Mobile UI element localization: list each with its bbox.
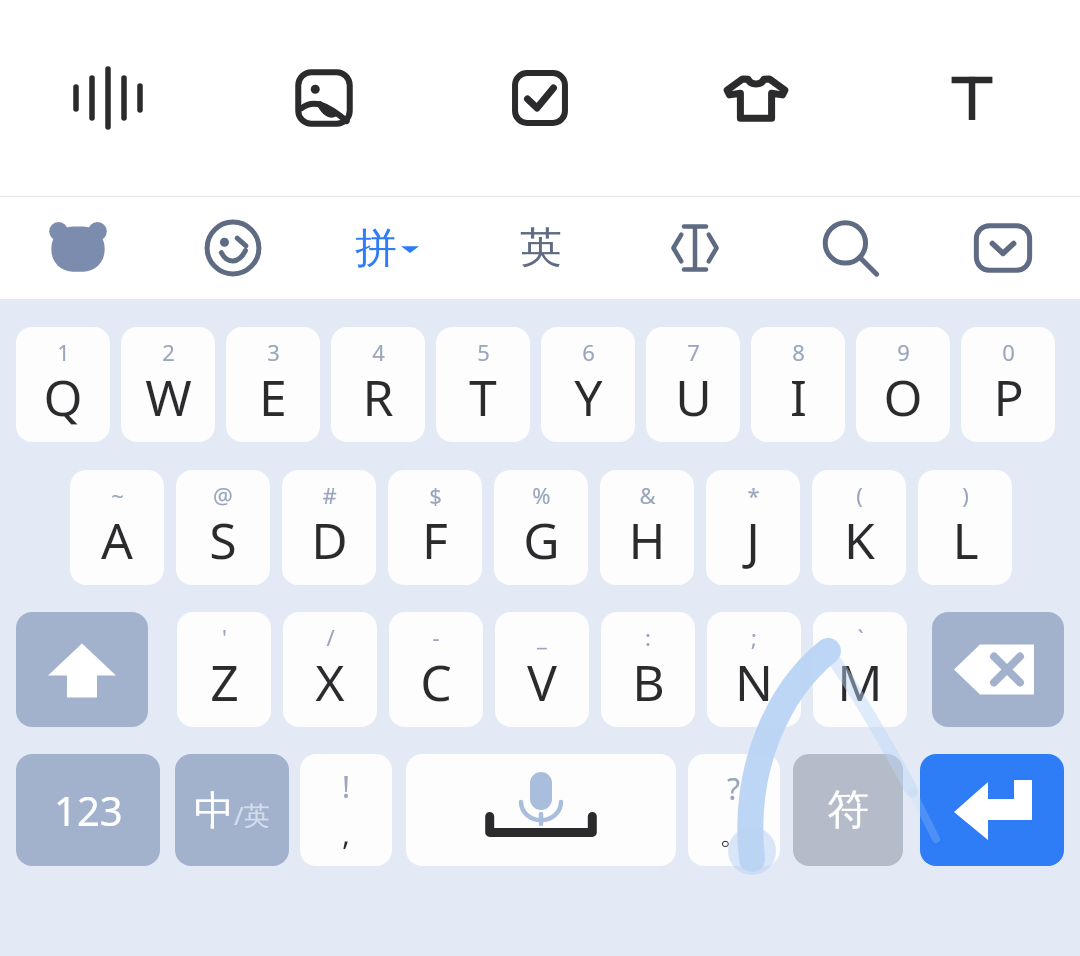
staticText: 符 bbox=[827, 784, 869, 837]
button[interactable]: Images bbox=[216, 0, 432, 196]
button[interactable]: 7 bbox=[646, 327, 740, 442]
staticText: V bbox=[527, 648, 557, 716]
button[interactable]: Shift bbox=[16, 612, 148, 727]
staticText: ' bbox=[222, 622, 227, 652]
button[interactable]: Emoji bbox=[155, 197, 310, 299]
button[interactable]: 1 bbox=[16, 327, 110, 442]
staticText: ! bbox=[342, 766, 351, 807]
staticText: ( bbox=[856, 480, 863, 510]
staticText: 0 bbox=[1002, 337, 1015, 367]
button[interactable]: ) bbox=[918, 470, 1012, 585]
staticText: N bbox=[735, 648, 773, 716]
staticText: / bbox=[326, 622, 335, 652]
staticText: W bbox=[145, 363, 192, 431]
button[interactable]: 拼 bbox=[310, 197, 464, 299]
button[interactable]: % bbox=[494, 470, 588, 585]
button[interactable]: $ bbox=[388, 470, 482, 585]
button[interactable]: ; bbox=[707, 612, 801, 727]
button[interactable]: 英 bbox=[464, 197, 618, 299]
button[interactable]: * bbox=[706, 470, 800, 585]
button[interactable]: 9 bbox=[856, 327, 950, 442]
staticText: Z bbox=[210, 648, 239, 716]
staticText: R bbox=[362, 363, 394, 431]
staticText: X bbox=[315, 648, 345, 716]
button[interactable]: _ bbox=[495, 612, 589, 727]
staticText: ` bbox=[857, 622, 864, 652]
staticText: ~ bbox=[111, 480, 124, 510]
staticText: S bbox=[209, 506, 237, 574]
button[interactable]: 4 bbox=[331, 327, 425, 442]
staticText: A bbox=[101, 506, 133, 574]
staticText: 1 bbox=[57, 337, 70, 367]
button[interactable]: @ bbox=[176, 470, 270, 585]
staticText: , bbox=[342, 813, 351, 854]
staticText: % bbox=[532, 480, 551, 510]
staticText: 4 bbox=[372, 337, 385, 367]
button[interactable]: 3 bbox=[226, 327, 320, 442]
staticText: K bbox=[844, 506, 875, 574]
staticText: 2 bbox=[162, 337, 175, 367]
staticText: * bbox=[747, 480, 760, 510]
staticText: 3 bbox=[267, 337, 280, 367]
staticText: - bbox=[432, 622, 440, 652]
staticText: P bbox=[993, 363, 1024, 431]
button[interactable]: Search bbox=[772, 197, 926, 299]
staticText: 6 bbox=[582, 337, 595, 367]
button[interactable]: ` bbox=[813, 612, 907, 727]
button[interactable]: Hide keyboard bbox=[926, 197, 1080, 299]
button[interactable]: 中 bbox=[175, 754, 289, 866]
button[interactable]: ' bbox=[177, 612, 271, 727]
staticText: Y bbox=[574, 363, 603, 431]
button[interactable]: 123 bbox=[16, 754, 160, 866]
button[interactable]: ! bbox=[300, 754, 392, 866]
button[interactable]: & bbox=[600, 470, 694, 585]
staticText: M bbox=[837, 648, 883, 716]
staticText: O bbox=[883, 363, 923, 431]
staticText: H bbox=[628, 506, 666, 574]
button[interactable]: 5 bbox=[436, 327, 530, 442]
staticText: & bbox=[639, 480, 656, 510]
button[interactable]: 6 bbox=[541, 327, 635, 442]
staticText: D bbox=[311, 506, 348, 574]
staticText: L bbox=[952, 506, 979, 574]
staticText: B bbox=[632, 648, 665, 716]
button[interactable]: 2 bbox=[121, 327, 215, 442]
staticText: # bbox=[322, 480, 337, 510]
button[interactable]: Enter bbox=[920, 754, 1064, 866]
staticText: G bbox=[523, 506, 560, 574]
staticText: 英 bbox=[520, 222, 562, 275]
staticText: /英 bbox=[234, 797, 270, 833]
button[interactable]: Checklist bbox=[432, 0, 648, 196]
button[interactable]: 0 bbox=[961, 327, 1055, 442]
staticText: Q bbox=[43, 363, 83, 431]
staticText: 8 bbox=[792, 337, 805, 367]
staticText: I bbox=[790, 363, 807, 431]
button[interactable]: Skins bbox=[648, 0, 864, 196]
button[interactable]: Text bbox=[864, 0, 1080, 196]
button[interactable]: Space bbox=[406, 754, 676, 866]
staticText: 7 bbox=[687, 337, 700, 367]
button[interactable]: ( bbox=[812, 470, 906, 585]
button[interactable]: Voice input bbox=[0, 0, 216, 196]
staticText: T bbox=[469, 363, 497, 431]
staticText: 中 bbox=[194, 785, 234, 835]
staticText: U bbox=[675, 363, 712, 431]
staticText: _ bbox=[537, 622, 547, 652]
staticText: J bbox=[746, 506, 760, 574]
staticText: 。 bbox=[719, 815, 749, 853]
staticText: C bbox=[420, 648, 452, 716]
button[interactable]: ~ bbox=[70, 470, 164, 585]
button[interactable]: ? bbox=[688, 754, 780, 866]
button[interactable]: Cursor control bbox=[618, 197, 772, 299]
button[interactable]: 8 bbox=[751, 327, 845, 442]
button[interactable]: # bbox=[282, 470, 376, 585]
button[interactable]: - bbox=[389, 612, 483, 727]
button[interactable]: Backspace bbox=[932, 612, 1064, 727]
button[interactable]: / bbox=[283, 612, 377, 727]
staticText: ; bbox=[751, 622, 757, 652]
staticText: 9 bbox=[897, 337, 910, 367]
button[interactable]: : bbox=[601, 612, 695, 727]
button[interactable]: Baidu input bbox=[0, 197, 155, 299]
button[interactable]: 符 bbox=[793, 754, 903, 866]
staticText: E bbox=[259, 363, 287, 431]
